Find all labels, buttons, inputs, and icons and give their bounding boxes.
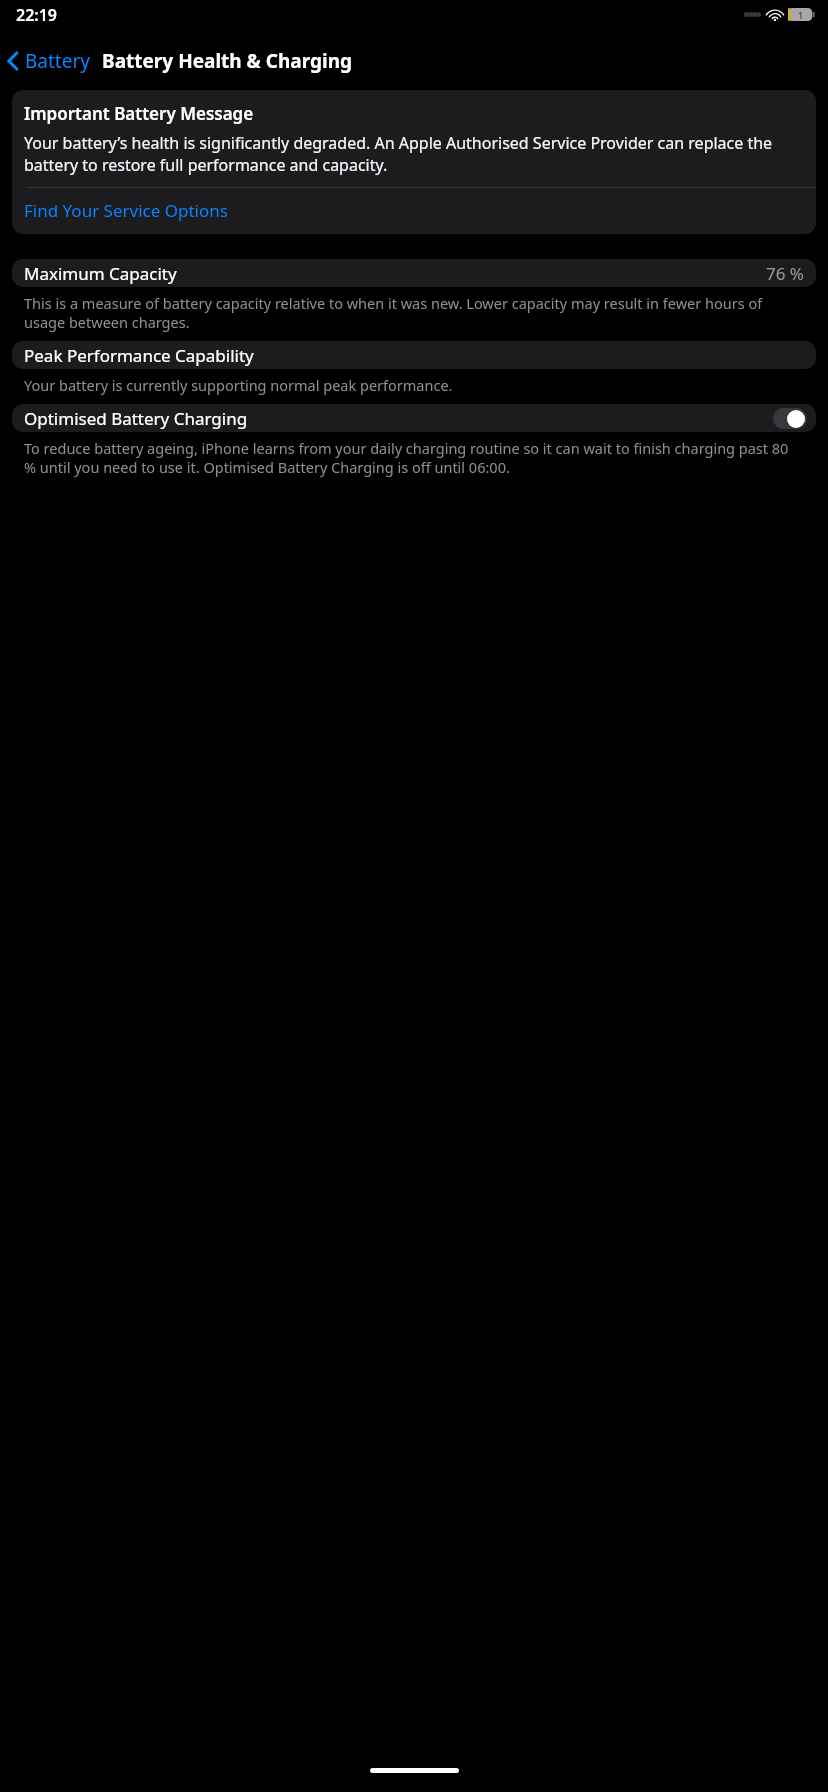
button[interactable]: Optimised Battery Charging toggle xyxy=(773,408,807,429)
button[interactable]: Find Your Service Options xyxy=(12,188,816,234)
button[interactable]: Peak Performance Capability xyxy=(12,341,816,369)
button[interactable]: Maximum Capacity xyxy=(12,259,816,287)
staticText: Maximum Capacity xyxy=(24,262,177,285)
staticText: Your battery is currently supporting nor… xyxy=(24,375,453,395)
button[interactable]: Battery xyxy=(0,46,94,76)
staticText: Battery Health & Charging xyxy=(102,48,353,74)
staticText: 22:19 xyxy=(16,4,58,26)
staticText: Battery xyxy=(25,48,90,74)
staticText: Optimised Battery Charging xyxy=(24,407,248,430)
button[interactable]: Optimised Battery Charging xyxy=(12,404,816,432)
staticText: Find Your Service Options xyxy=(24,199,228,222)
staticText: Peak Performance Capability xyxy=(24,344,254,367)
staticText: Important Battery Message xyxy=(24,102,254,125)
staticText: This is a measure of battery capacity re… xyxy=(24,293,804,332)
staticText: Your battery’s health is significantly d… xyxy=(24,132,804,176)
staticText: To reduce battery ageing, iPhone learns … xyxy=(24,438,804,477)
staticText: 76 % xyxy=(766,262,804,285)
staticText: 1 xyxy=(798,9,804,21)
